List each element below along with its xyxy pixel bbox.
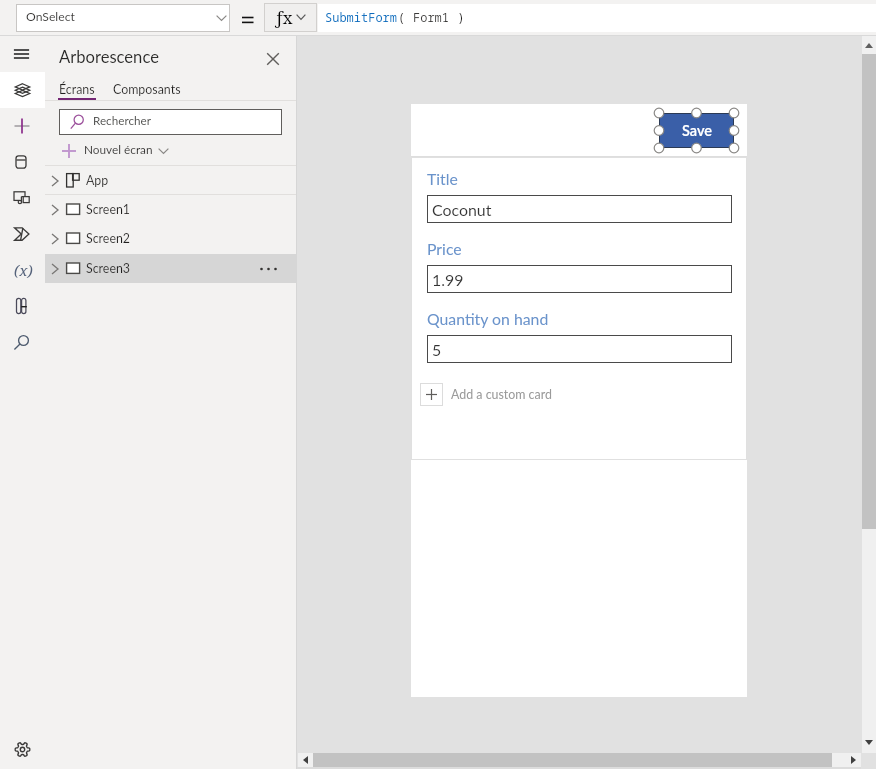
staticText: App: [86, 173, 109, 188]
staticText: Coconut: [432, 200, 492, 219]
button[interactable]: Rechercher: [59, 109, 282, 135]
staticText: ƒx: [275, 6, 293, 29]
button[interactable]: Variables: [0, 252, 45, 288]
button[interactable]: Écrans: [54, 78, 90, 102]
button[interactable]: Close: [261, 47, 285, 71]
button[interactable]: Screen2: [45, 224, 297, 253]
button[interactable]: Tests: [0, 288, 45, 324]
staticText: Save: [682, 122, 712, 139]
staticText: Nouvel écran: [84, 142, 153, 156]
button[interactable]: Search: [0, 324, 45, 360]
staticText: 5: [432, 340, 442, 359]
staticText: Arborescence: [59, 47, 159, 67]
button[interactable]: Composants: [108, 78, 176, 102]
button[interactable]: Save: [659, 113, 734, 148]
button[interactable]: 5: [427, 335, 732, 363]
button[interactable]: Scroll left: [298, 753, 313, 767]
button[interactable]: Scroll down: [862, 735, 876, 753]
staticText: (x): [14, 260, 33, 280]
staticText: Rechercher: [93, 113, 151, 127]
button[interactable]: Media: [0, 180, 45, 216]
button[interactable]: Coconut: [427, 195, 732, 223]
button[interactable]: Screen3: [45, 254, 297, 283]
button[interactable]: Add a custom card: [420, 383, 552, 406]
button[interactable]: OnSelect: [16, 4, 230, 32]
staticText: Composants: [113, 82, 181, 97]
staticText: Form1: [413, 9, 450, 25]
staticText: (: [398, 9, 413, 25]
button[interactable]: Screen1: [45, 195, 297, 224]
staticText: Title: [427, 169, 458, 188]
button[interactable]: Nouvel écran: [53, 137, 223, 163]
staticText: Quantity on hand: [427, 309, 549, 328]
staticText: Add a custom card: [451, 387, 552, 402]
button[interactable]: Scroll right: [846, 753, 861, 767]
button[interactable]: App: [45, 166, 297, 195]
button[interactable]: Menu: [0, 36, 45, 72]
button[interactable]: Scroll up: [862, 36, 876, 54]
button[interactable]: Insert: [0, 108, 45, 144]
staticText: SubmitForm: [325, 9, 398, 25]
button[interactable]: SubmitForm: [318, 4, 876, 32]
staticText: ): [450, 9, 465, 25]
staticText: Screen3: [86, 261, 131, 276]
staticText: OnSelect: [26, 9, 75, 24]
button[interactable]: Settings: [0, 731, 45, 768]
button[interactable]: Tree view: [0, 72, 45, 108]
staticText: 1.99: [432, 270, 464, 289]
staticText: Screen2: [86, 231, 131, 246]
button[interactable]: Data: [0, 144, 45, 180]
button[interactable]: Formula options: [264, 3, 317, 32]
staticText: Price: [427, 239, 462, 258]
staticText: Screen1: [86, 202, 131, 217]
staticText: Écrans: [59, 82, 95, 97]
button[interactable]: Power Automate: [0, 216, 45, 252]
button[interactable]: 1.99: [427, 265, 732, 293]
